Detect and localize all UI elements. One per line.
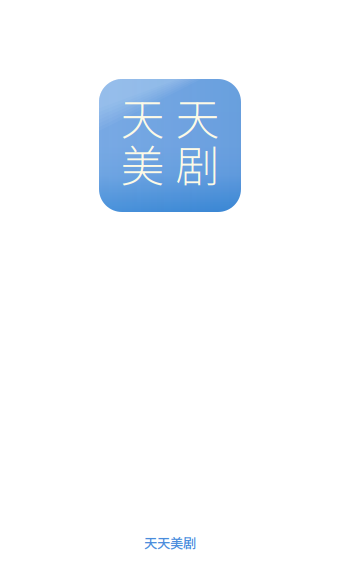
staticText: 天天美剧 [144, 533, 196, 552]
staticText: 剧 [175, 131, 219, 195]
staticText: 天 [175, 84, 219, 148]
staticText: 天 [120, 84, 164, 148]
staticText: 美 [120, 131, 164, 195]
